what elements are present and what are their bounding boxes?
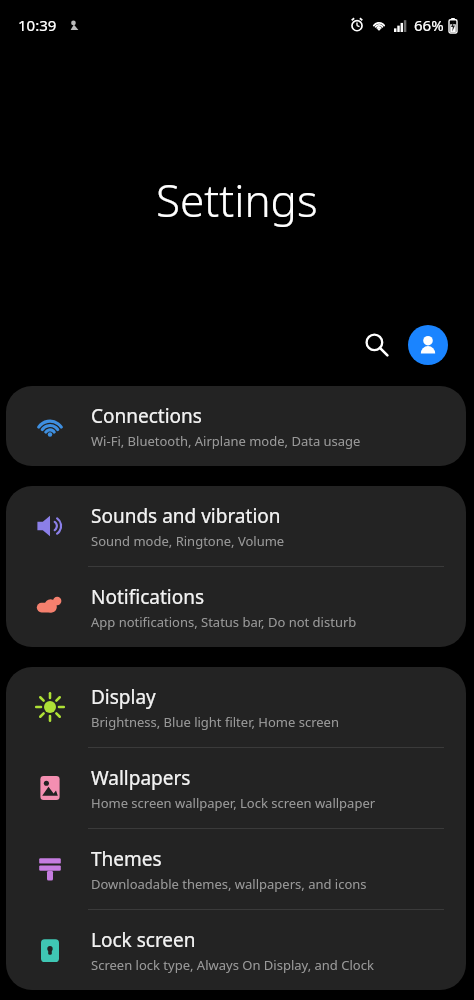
staticText: Wallpapers xyxy=(91,765,191,791)
button[interactable]: Lock screen xyxy=(6,910,466,990)
staticText: 66% xyxy=(414,15,444,35)
button[interactable]: Themes xyxy=(6,829,466,909)
staticText: Brightness, Blue light filter, Home scre… xyxy=(91,713,339,731)
staticText: 10:39 xyxy=(18,15,57,35)
staticText: Themes xyxy=(91,846,162,872)
staticText: Home screen wallpaper, Lock screen wallp… xyxy=(91,794,376,812)
staticText: Settings xyxy=(156,170,318,230)
button[interactable]: Display xyxy=(6,667,466,747)
staticText: Downloadable themes, wallpapers, and ico… xyxy=(91,875,367,893)
staticText: Lock screen xyxy=(91,927,196,953)
staticText: Sound mode, Ringtone, Volume xyxy=(91,532,285,550)
staticText: Sounds and vibration xyxy=(91,503,281,529)
staticText: Display xyxy=(91,684,156,710)
button[interactable]: Account xyxy=(408,325,448,365)
staticText: Wi-Fi, Bluetooth, Airplane mode, Data us… xyxy=(91,432,361,450)
staticText: Screen lock type, Always On Display, and… xyxy=(91,956,374,974)
button[interactable]: Sounds and vibration xyxy=(6,486,466,566)
button[interactable]: Connections xyxy=(6,386,466,466)
button[interactable]: Search xyxy=(354,322,400,368)
button[interactable]: Wallpapers xyxy=(6,748,466,828)
button[interactable]: Notifications xyxy=(6,567,466,647)
staticText: Connections xyxy=(91,403,202,429)
staticText: Notifications xyxy=(91,584,205,610)
staticText: App notifications, Status bar, Do not di… xyxy=(91,613,357,631)
